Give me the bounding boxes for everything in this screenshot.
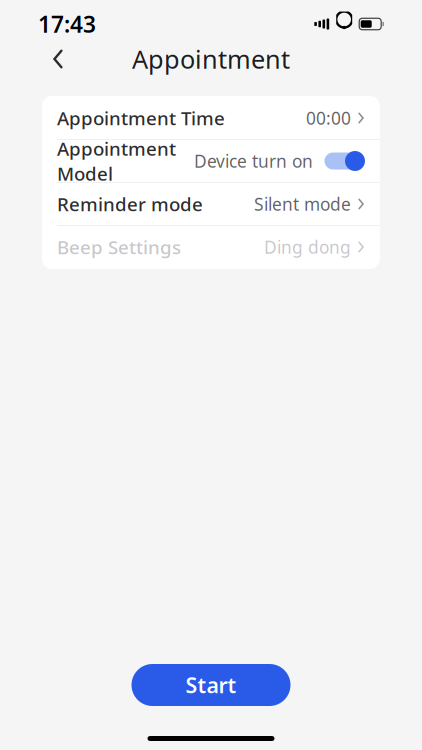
button[interactable]: Back: [38, 39, 78, 79]
staticText: Silent mode: [254, 192, 351, 215]
staticText: Appointment: [132, 42, 290, 76]
staticText: Ding dong: [264, 235, 351, 258]
staticText: Beep Settings: [57, 235, 181, 259]
staticText: Appointment Model: [57, 136, 176, 186]
staticText: Appointment Time: [57, 106, 225, 130]
button[interactable]: Appointment Time: [42, 97, 380, 139]
staticText: Start: [185, 671, 236, 699]
button[interactable]: Beep Settings: [42, 226, 380, 268]
button[interactable]: Start: [131, 664, 290, 706]
staticText: Reminder mode: [57, 192, 203, 216]
button[interactable]: Reminder mode: [42, 183, 380, 225]
staticText: Device turn on: [194, 149, 313, 172]
button[interactable]: Appointment Model: [42, 140, 380, 182]
staticText: 17:43: [38, 9, 96, 39]
staticText: 00:00: [306, 106, 351, 129]
